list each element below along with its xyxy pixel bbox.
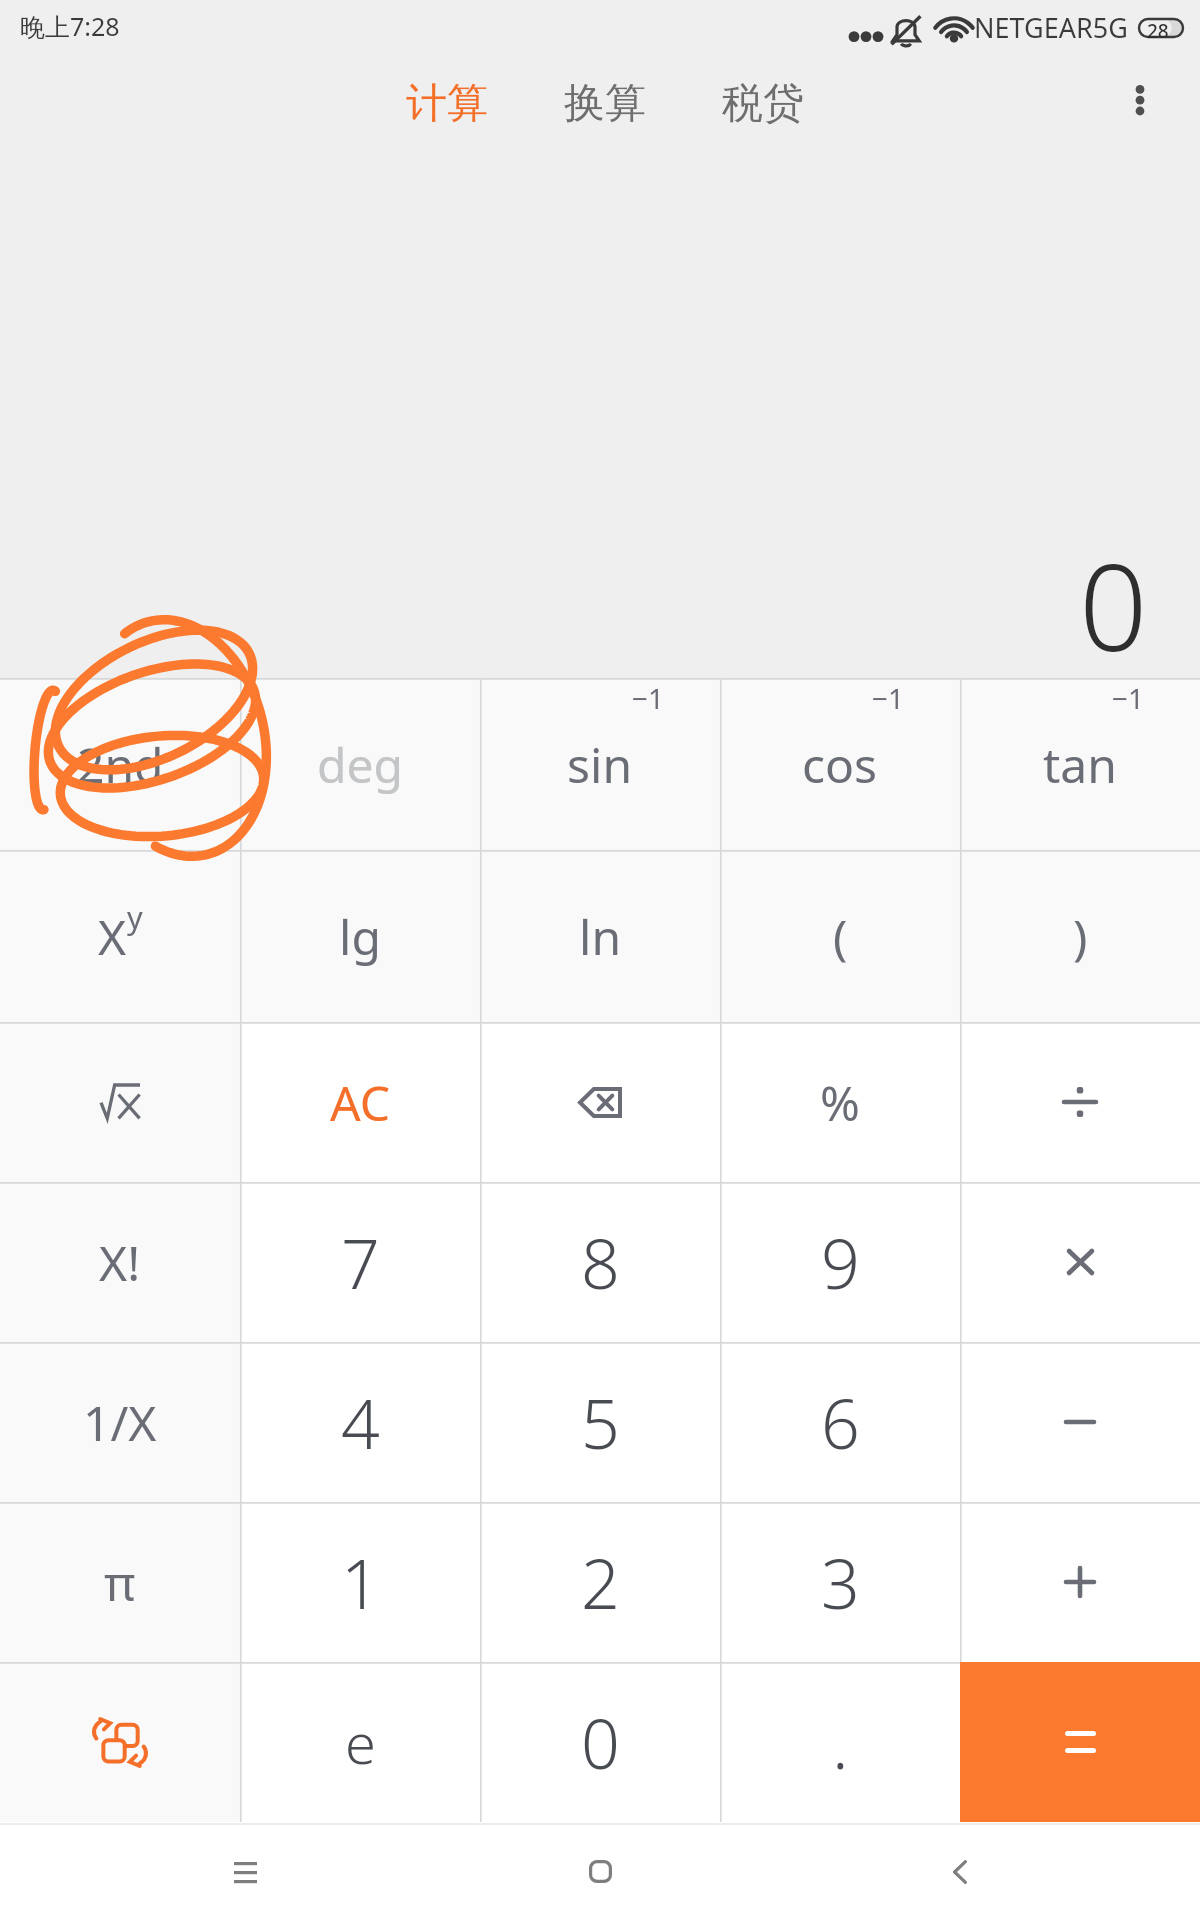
staticText: −1	[872, 679, 905, 717]
staticText: deg	[317, 732, 404, 797]
button[interactable]: X	[0, 850, 240, 1022]
staticText: 0	[1079, 523, 1148, 686]
staticText: 3	[821, 1536, 860, 1629]
button[interactable]: )	[960, 850, 1200, 1022]
button[interactable]: 5	[480, 1342, 720, 1502]
button[interactable]: tan	[960, 678, 1200, 850]
staticText: )	[1073, 904, 1088, 969]
button[interactable]: 2	[480, 1502, 720, 1662]
button[interactable]: .	[720, 1662, 960, 1822]
button[interactable]: 计算	[368, 62, 526, 146]
staticText: NETGEAR5G	[974, 9, 1128, 46]
button[interactable]: ln	[480, 850, 720, 1022]
staticText: 税贷	[722, 78, 804, 130]
button[interactable]: π	[0, 1502, 240, 1662]
staticText: 9	[821, 1216, 860, 1309]
staticText: 5	[581, 1376, 620, 1469]
staticText: 1	[341, 1536, 380, 1629]
button[interactable]: 4	[240, 1342, 480, 1502]
button[interactable]: More options	[1105, 65, 1175, 135]
button[interactable]: Minus	[960, 1342, 1200, 1502]
staticText: 换算	[564, 78, 646, 130]
button[interactable]: e	[240, 1662, 480, 1822]
staticText: (	[833, 904, 848, 969]
other: Square root	[70, 1052, 170, 1152]
button[interactable]: cos	[720, 678, 960, 850]
staticText: .	[832, 1696, 849, 1789]
button[interactable]: 7	[240, 1182, 480, 1342]
button[interactable]: Back	[900, 1823, 1020, 1920]
other: Divide	[1030, 1052, 1130, 1152]
button[interactable]: 0	[480, 1662, 720, 1822]
button[interactable]: Backspace	[480, 1022, 720, 1182]
button[interactable]: 换算	[526, 62, 684, 146]
staticText: AC	[330, 1070, 391, 1135]
button[interactable]: 税贷	[684, 62, 842, 146]
button[interactable]: Square root	[0, 1022, 240, 1182]
button[interactable]: sin	[480, 678, 720, 850]
button[interactable]: Home	[540, 1823, 660, 1920]
staticText: 28	[1147, 18, 1169, 38]
staticText: 7	[341, 1216, 380, 1309]
button[interactable]: 9	[720, 1182, 960, 1342]
staticText: 2	[581, 1536, 620, 1629]
button[interactable]: 3	[720, 1502, 960, 1662]
staticText: lg	[339, 904, 381, 969]
staticText: ln	[579, 904, 622, 969]
button[interactable]: 1/X	[0, 1342, 240, 1502]
button[interactable]: deg	[240, 678, 480, 850]
button[interactable]: Multiply	[960, 1182, 1200, 1342]
staticText: tan	[1043, 732, 1117, 797]
staticText: sin	[567, 732, 633, 797]
staticText: y	[127, 896, 143, 938]
other: Switch calculator mode	[70, 1692, 170, 1792]
button[interactable]: 1	[240, 1502, 480, 1662]
staticText: X	[98, 904, 127, 969]
staticText: %	[820, 1070, 860, 1135]
button[interactable]: 2nd	[0, 678, 240, 850]
staticText: −1	[632, 679, 665, 717]
other: Equals	[1030, 1692, 1130, 1792]
staticText: cos	[802, 732, 878, 797]
button[interactable]: Recents	[185, 1823, 305, 1920]
staticText: e	[345, 1704, 376, 1780]
other: Plus	[1030, 1532, 1130, 1632]
button[interactable]: %	[720, 1022, 960, 1182]
staticText: 计算	[406, 78, 488, 130]
button[interactable]: Switch calculator mode	[0, 1662, 240, 1822]
staticText: 2nd	[77, 732, 164, 797]
staticText: π	[104, 1550, 136, 1615]
other: Backspace	[550, 1052, 650, 1152]
other: Multiply	[1030, 1212, 1130, 1312]
staticText: 晚上7:28	[20, 9, 120, 43]
button[interactable]: Equals	[960, 1662, 1200, 1822]
button[interactable]: 8	[480, 1182, 720, 1342]
staticText: 4	[341, 1376, 380, 1469]
staticText: 6	[821, 1376, 860, 1469]
button[interactable]: X!	[0, 1182, 240, 1342]
button[interactable]: (	[720, 850, 960, 1022]
button[interactable]: AC	[240, 1022, 480, 1182]
staticText: −1	[1112, 679, 1145, 717]
staticText: 8	[581, 1216, 620, 1309]
button[interactable]: Plus	[960, 1502, 1200, 1662]
button[interactable]: Divide	[960, 1022, 1200, 1182]
staticText: 0	[581, 1696, 620, 1789]
button[interactable]: 6	[720, 1342, 960, 1502]
button[interactable]: lg	[240, 850, 480, 1022]
other: Minus	[1030, 1372, 1130, 1472]
staticText: X!	[99, 1230, 141, 1295]
staticText: 1/X	[83, 1390, 157, 1455]
